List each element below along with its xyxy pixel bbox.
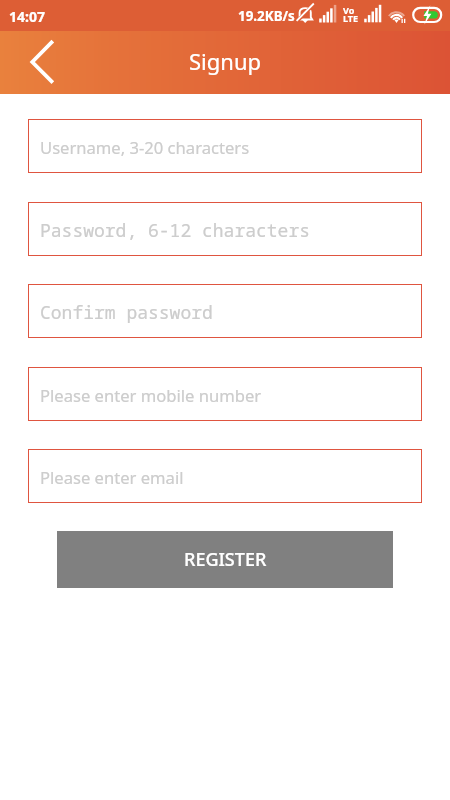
staticText: LTE — [343, 12, 359, 24]
staticText: Vo — [343, 4, 355, 16]
staticText: REGISTER — [184, 547, 267, 572]
staticText: Please enter mobile number — [40, 384, 262, 407]
staticText: 19.2KB/s — [238, 7, 295, 25]
button[interactable]: Please enter mobile number — [28, 367, 422, 421]
button[interactable]: Confirm password — [28, 284, 422, 338]
staticText: Password, 6-12 characters — [40, 218, 310, 243]
staticText: Username, 3-20 characters — [40, 136, 250, 159]
button[interactable]: Back — [18, 38, 66, 86]
button[interactable]: Please enter email — [28, 449, 422, 503]
button[interactable]: Password, 6-12 characters — [28, 202, 422, 256]
staticText: Please enter email — [40, 466, 184, 489]
staticText: Signup — [189, 46, 262, 76]
staticText: Confirm password — [40, 300, 213, 325]
button[interactable]: REGISTER — [57, 531, 393, 588]
button[interactable]: Username, 3-20 characters — [28, 119, 422, 173]
staticText: 14:07 — [9, 7, 45, 26]
